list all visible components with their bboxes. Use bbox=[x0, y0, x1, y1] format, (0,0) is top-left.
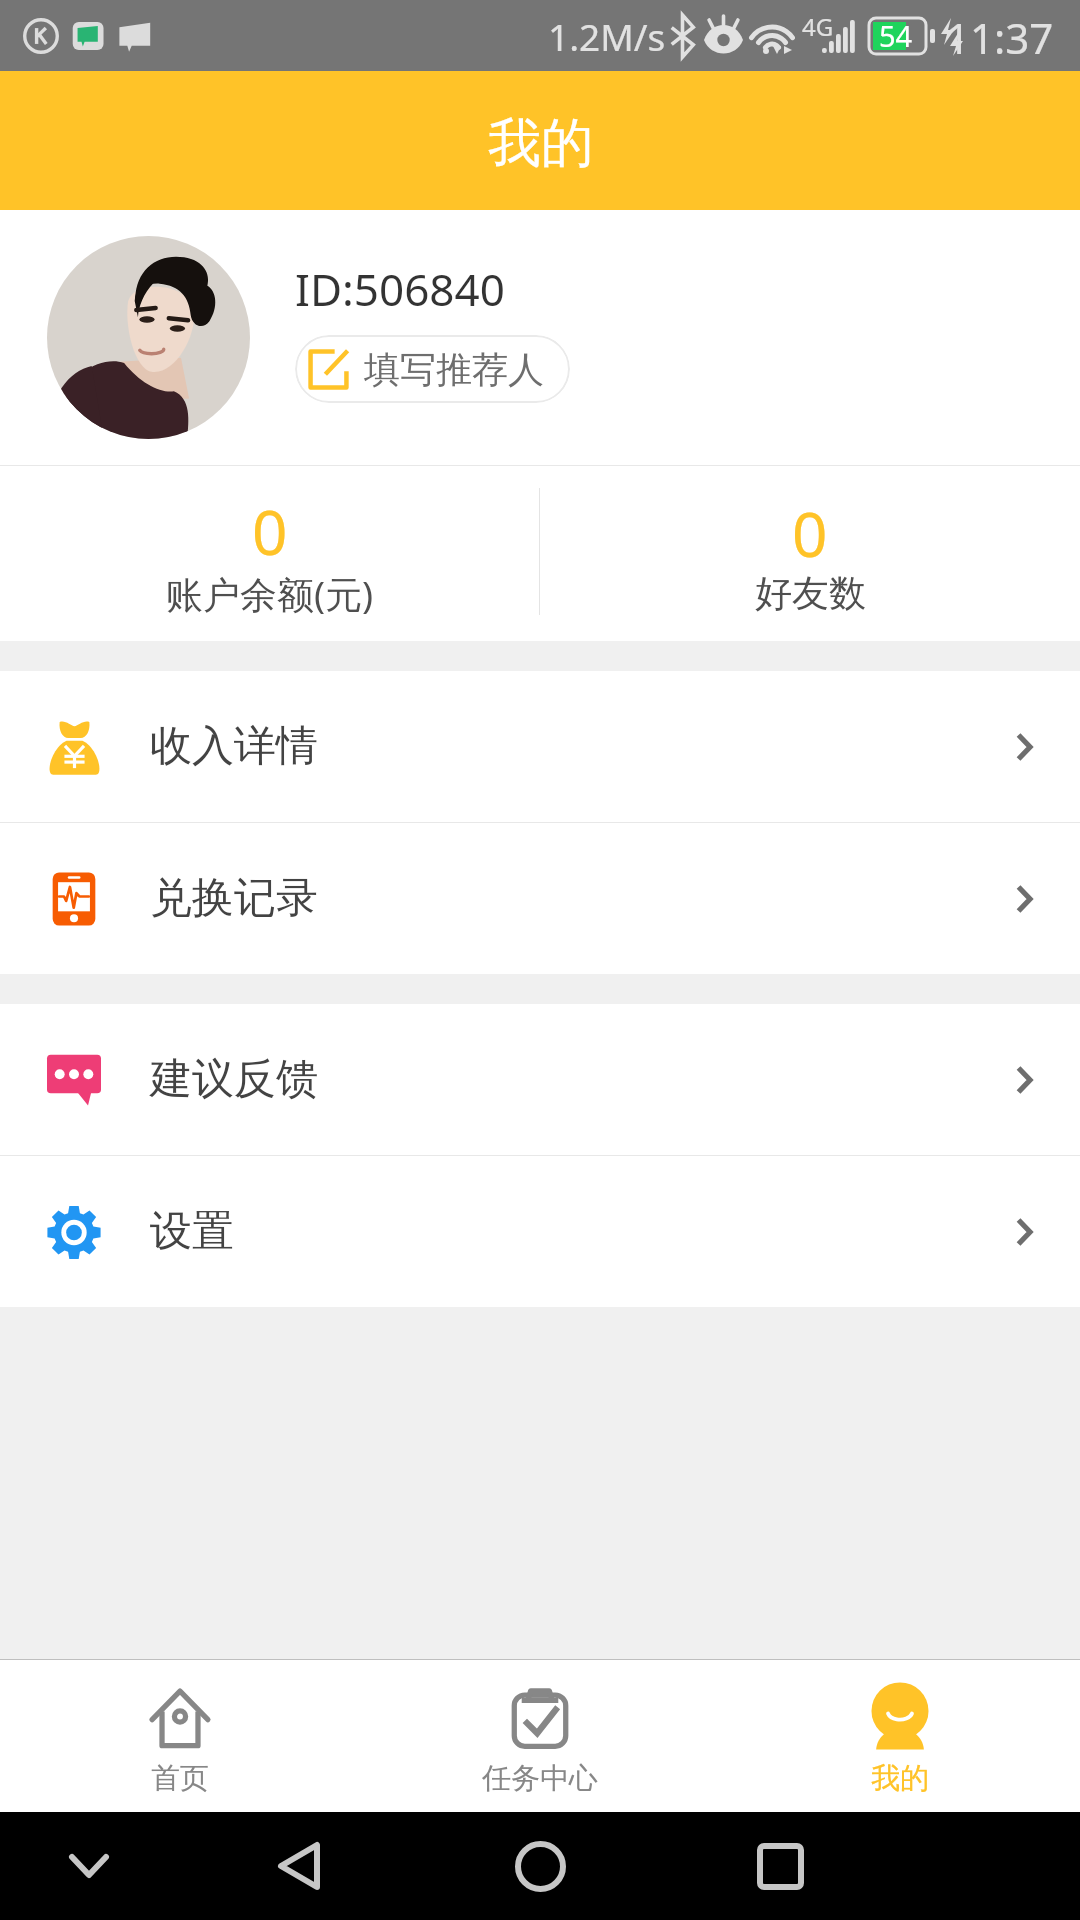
staticText: 54 bbox=[879, 16, 913, 55]
staticText: 收入详情 bbox=[150, 720, 318, 773]
staticText: 11:37 bbox=[946, 9, 1054, 63]
button[interactable]: 任务中心 bbox=[360, 1660, 720, 1812]
staticText: 1.2M/s bbox=[548, 11, 666, 61]
button[interactable]: 填写推荐人 bbox=[295, 335, 570, 403]
button[interactable]: 0 bbox=[0, 466, 539, 641]
staticText: 4G bbox=[802, 10, 834, 43]
staticText: 我的 bbox=[871, 1760, 929, 1797]
staticText: 首页 bbox=[151, 1760, 209, 1797]
staticText: 填写推荐人 bbox=[364, 347, 544, 392]
button[interactable]: 0 bbox=[540, 466, 1080, 641]
staticText: 设置 bbox=[150, 1205, 234, 1258]
staticText: 兑换记录 bbox=[150, 872, 318, 925]
staticText: 任务中心 bbox=[482, 1760, 598, 1797]
staticText: 我的 bbox=[488, 110, 594, 177]
staticText: 0 bbox=[792, 491, 828, 575]
staticText: 建议反馈 bbox=[150, 1053, 318, 1106]
button[interactable]: Home bbox=[500, 1826, 580, 1906]
button[interactable]: Profile photo bbox=[47, 236, 250, 439]
staticText: 账户余额(元) bbox=[166, 568, 374, 619]
button[interactable]: Hide keyboard bbox=[49, 1826, 129, 1906]
button[interactable]: 我的 bbox=[720, 1660, 1080, 1812]
staticText: 0 bbox=[252, 489, 288, 573]
button[interactable]: Back bbox=[259, 1826, 339, 1906]
button[interactable]: 首页 bbox=[0, 1660, 360, 1812]
button[interactable]: 设置 bbox=[0, 1156, 1080, 1307]
button[interactable]: 收入详情 bbox=[0, 671, 1080, 822]
staticText: ID:506840 bbox=[295, 259, 505, 319]
button[interactable]: Recents bbox=[740, 1826, 820, 1906]
button[interactable]: 兑换记录 bbox=[0, 823, 1080, 974]
staticText: 好友数 bbox=[755, 570, 866, 617]
button[interactable]: 建议反馈 bbox=[0, 1004, 1080, 1155]
